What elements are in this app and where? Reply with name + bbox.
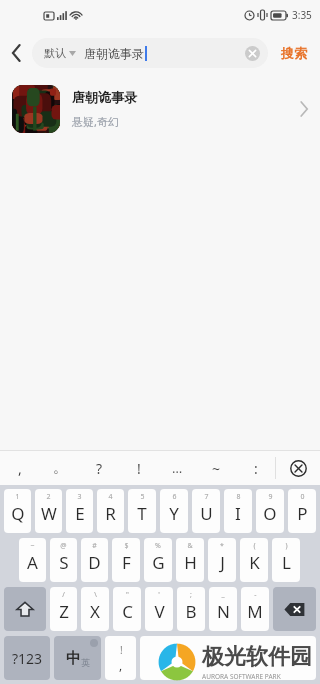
staticText: -: [254, 590, 257, 600]
button[interactable]: Close keyboard: [276, 451, 320, 485]
staticText: 搜索: [281, 45, 307, 61]
staticText: ~: [30, 541, 35, 551]
button[interactable]: :: [236, 451, 275, 485]
staticText: ?123: [12, 649, 43, 668]
staticText: @: [60, 541, 67, 551]
staticText: Z: [59, 600, 69, 623]
staticText: 4: [108, 492, 113, 502]
button[interactable]: Back: [0, 30, 32, 76]
button[interactable]: !: [119, 451, 158, 485]
staticText: H: [184, 551, 197, 574]
button[interactable]: ~: [197, 451, 236, 485]
staticText: 英: [81, 657, 90, 668]
button[interactable]: /: [50, 587, 77, 631]
staticText: 9: [268, 492, 273, 502]
staticText: ?: [96, 459, 103, 478]
staticText: 7: [204, 492, 209, 502]
staticText: 1: [15, 492, 20, 502]
staticText: AURORA SOFTWARE PARK: [202, 672, 281, 681]
staticText: T: [137, 502, 147, 525]
staticText: ": [126, 590, 129, 600]
staticText: /: [62, 590, 65, 600]
button[interactable]: 默认: [32, 38, 268, 68]
staticText: 2: [46, 492, 51, 502]
button[interactable]: …: [158, 451, 197, 485]
button[interactable]: Clear: [239, 40, 265, 66]
button[interactable]: @: [50, 538, 77, 582]
button[interactable]: !: [105, 636, 136, 680]
staticText: 。: [53, 459, 67, 477]
staticText: ;: [190, 590, 192, 600]
staticText: F: [122, 551, 131, 574]
staticText: D: [88, 551, 101, 574]
button[interactable]: 6: [160, 489, 188, 533]
button[interactable]: 1: [4, 489, 31, 533]
button[interactable]: ;: [177, 587, 205, 631]
staticText: B: [185, 600, 197, 623]
staticText: 8: [236, 492, 241, 502]
button[interactable]: -: [241, 587, 269, 631]
staticText: A: [27, 551, 38, 574]
staticText: E: [75, 502, 85, 525]
button[interactable]: \: [81, 587, 109, 631]
staticText: J: [220, 551, 225, 574]
staticText: ,: [18, 459, 22, 478]
button[interactable]: %: [144, 538, 172, 582]
staticText: ): [285, 541, 288, 551]
staticText: Q: [11, 502, 25, 525]
button[interactable]: ": [113, 587, 141, 631]
button[interactable]: #: [81, 538, 108, 582]
staticText: 3: [77, 492, 82, 502]
button[interactable]: 中: [54, 636, 101, 680]
button[interactable]: 5: [128, 489, 156, 533]
button[interactable]: 9: [256, 489, 284, 533]
button[interactable]: Space: [140, 636, 316, 680]
staticText: G: [152, 551, 165, 574]
staticText: I: [235, 502, 241, 525]
button[interactable]: 。: [40, 451, 80, 485]
staticText: 5: [140, 492, 145, 502]
button[interactable]: 4: [97, 489, 124, 533]
button[interactable]: 搜索: [268, 30, 320, 76]
button[interactable]: ,: [0, 451, 40, 485]
staticText: :: [254, 459, 258, 478]
staticText: !: [120, 643, 123, 657]
staticText: *: [220, 541, 224, 551]
button[interactable]: 2: [35, 489, 62, 533]
staticText: M: [247, 600, 263, 623]
button[interactable]: &: [176, 538, 204, 582]
button[interactable]: ': [145, 587, 173, 631]
staticText: %: [155, 541, 161, 551]
staticText: K: [249, 551, 260, 574]
button[interactable]: 0: [288, 489, 316, 533]
staticText: 6: [172, 492, 177, 502]
staticText: X: [90, 600, 100, 623]
staticText: U: [200, 502, 213, 525]
button[interactable]: _: [209, 587, 237, 631]
staticText: ,: [119, 657, 123, 673]
button[interactable]: ~: [19, 538, 46, 582]
button[interactable]: Backspace: [273, 587, 316, 631]
staticText: L: [282, 551, 291, 574]
button[interactable]: 唐朝诡事录: [0, 76, 320, 142]
staticText: ': [158, 590, 160, 600]
staticText: !: [137, 459, 141, 478]
button[interactable]: 7: [192, 489, 220, 533]
button[interactable]: ): [272, 538, 300, 582]
staticText: (: [253, 541, 256, 551]
staticText: 唐朝诡事录: [84, 46, 144, 61]
button[interactable]: *: [208, 538, 236, 582]
button[interactable]: ?: [80, 451, 119, 485]
staticText: P: [297, 502, 308, 525]
button[interactable]: Shift: [4, 587, 46, 631]
staticText: R: [105, 502, 116, 525]
button[interactable]: ?123: [4, 636, 50, 680]
staticText: O: [263, 502, 277, 525]
button[interactable]: (: [240, 538, 268, 582]
button[interactable]: 8: [224, 489, 252, 533]
staticText: &: [187, 541, 193, 551]
staticText: 0: [300, 492, 305, 502]
button[interactable]: 3: [66, 489, 93, 533]
button[interactable]: $: [112, 538, 140, 582]
staticText: 悬疑,奇幻: [72, 114, 119, 129]
